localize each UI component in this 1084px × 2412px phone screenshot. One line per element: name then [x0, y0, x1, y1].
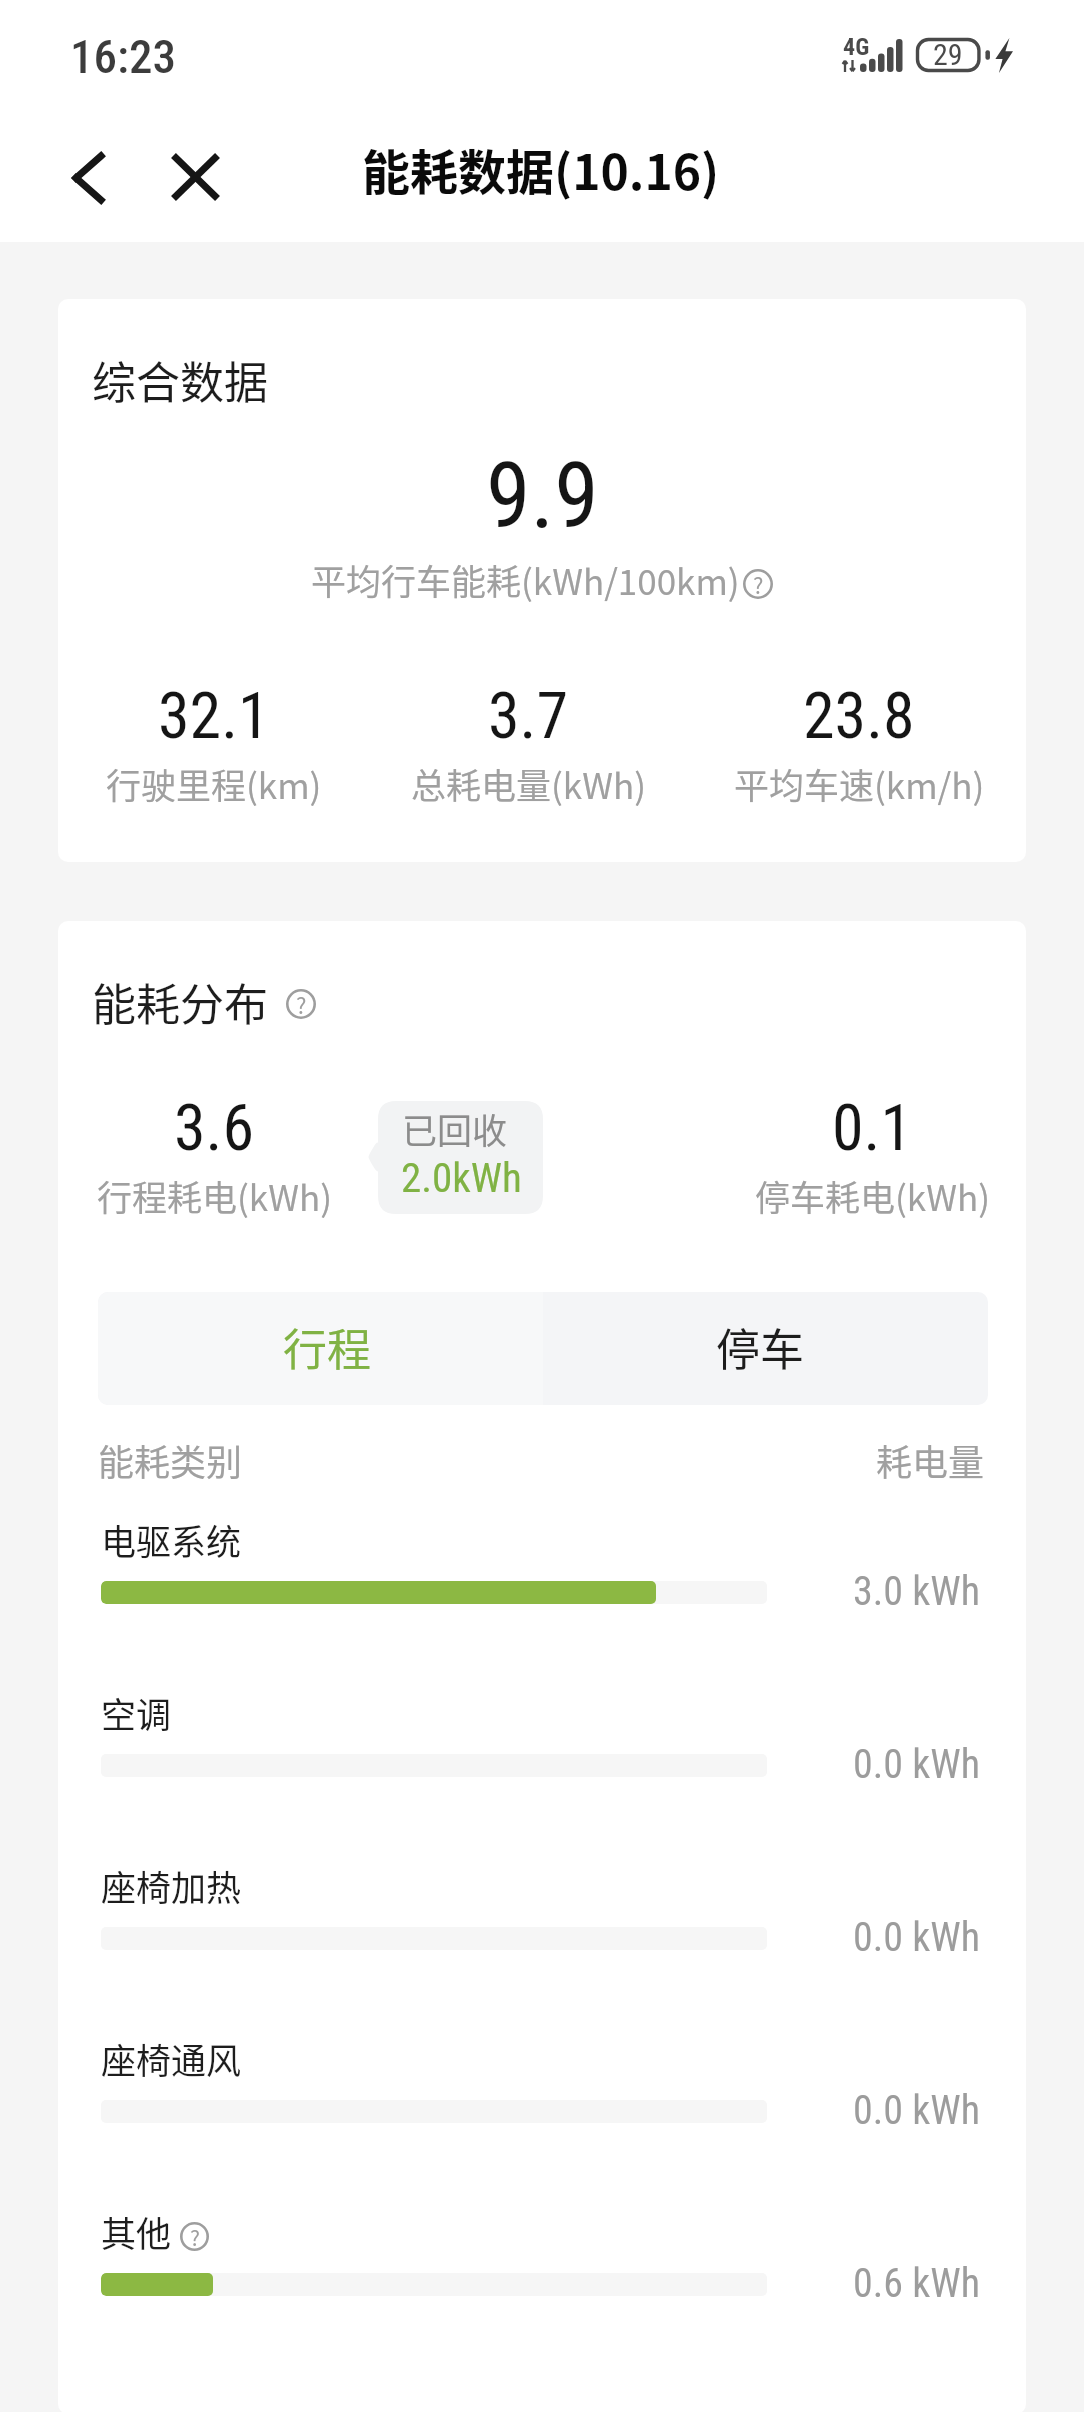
staticText: 总耗电量(kWh) [411, 758, 646, 809]
staticText: 平均行车能耗(kWh/100km) [311, 554, 740, 605]
staticText: 16:23 [70, 29, 176, 84]
staticText: 能耗类别 [98, 1434, 243, 1486]
staticText: 已回收 [402, 1103, 508, 1154]
staticText: 耗电量 [876, 1434, 985, 1486]
staticText: 9.9 [486, 444, 599, 549]
button[interactable]: 综合数据 [58, 299, 1026, 862]
staticText: ? [753, 568, 764, 598]
staticText: ? [296, 988, 307, 1018]
staticText: 0.6 kWh [853, 2260, 981, 2307]
button[interactable]: 能耗分布 [58, 921, 1026, 2412]
button[interactable]: Help: energy distribution [286, 989, 316, 1019]
staticText: 0.0 kWh [853, 2087, 981, 2134]
staticText: 其他 [101, 2206, 172, 2257]
staticText: 能耗分布 [92, 970, 268, 1034]
staticText: 综合数据 [92, 348, 268, 412]
staticText: 行程耗电(kWh) [97, 1170, 332, 1221]
button[interactable]: 行程 [98, 1292, 543, 1405]
button[interactable]: Help: other consumption [180, 2222, 209, 2251]
staticText: 行程 [283, 1315, 371, 1379]
staticText: 2.0kWh [401, 1154, 522, 1202]
staticText: 3.7 [488, 679, 569, 754]
staticText: 0.1 [832, 1091, 913, 1166]
staticText: 0.0 kWh [853, 1741, 981, 1788]
staticText: 3.6 [174, 1091, 255, 1166]
staticText: 29 [933, 37, 963, 71]
button[interactable]: Close [157, 138, 233, 215]
staticText: 4G [843, 33, 870, 61]
staticText: 座椅通风 [101, 2033, 242, 2084]
button[interactable]: Help: average driving consumption [743, 569, 773, 599]
button[interactable]: Back [50, 139, 126, 216]
staticText: 停车耗电(kWh) [755, 1170, 990, 1221]
staticText: 0.0 kWh [853, 1914, 981, 1961]
staticText: 行驶里程(km) [106, 758, 322, 809]
staticText: ? [190, 2222, 200, 2251]
staticText: 座椅加热 [101, 1860, 242, 1911]
staticText: 3.0 kWh [853, 1568, 981, 1615]
staticText: 23.8 [803, 679, 915, 754]
staticText: 平均车速(km/h) [734, 758, 985, 809]
staticText: 停车 [716, 1315, 804, 1379]
button[interactable]: 停车 [543, 1292, 988, 1405]
staticText: 32.1 [158, 679, 270, 754]
staticText: 能耗数据(10.16) [362, 134, 720, 204]
staticText: 空调 [101, 1687, 172, 1738]
staticText: 电驱系统 [101, 1514, 242, 1565]
